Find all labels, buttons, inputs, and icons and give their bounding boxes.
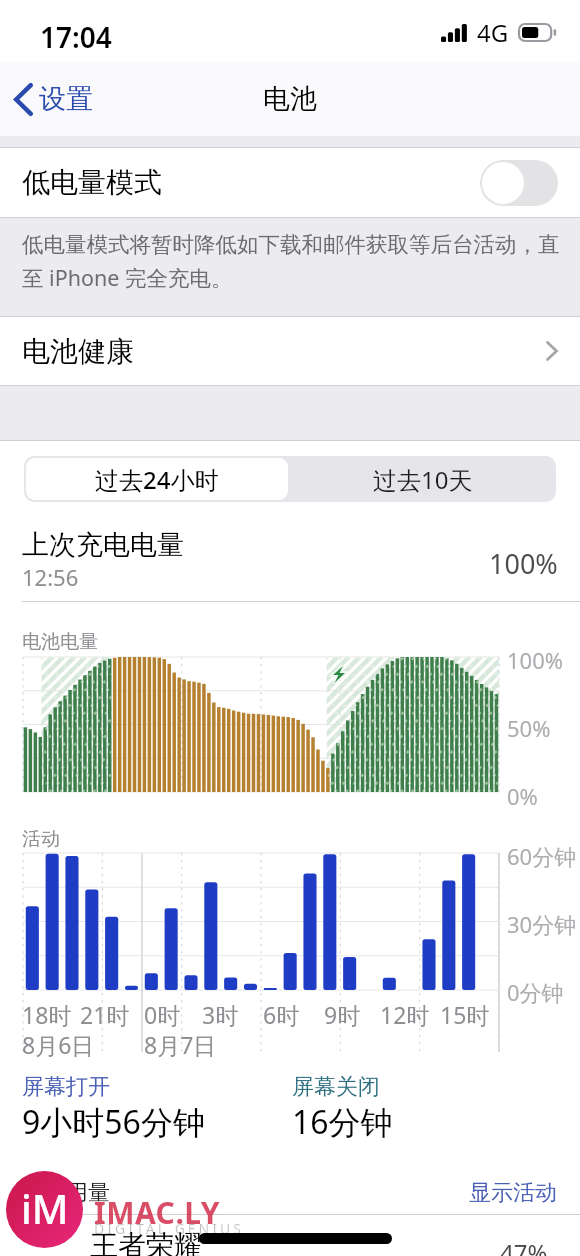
other: 电池健康 — [546, 341, 558, 361]
staticText: 过去10天 — [373, 463, 473, 496]
staticText: 0分钟 — [507, 977, 564, 1007]
staticText: IMAC.LY — [94, 1192, 220, 1233]
staticText: 100% — [489, 545, 558, 582]
button[interactable]: 过去24小时 — [26, 458, 288, 500]
staticText: 9时 — [324, 999, 361, 1030]
button[interactable]: 设置 — [0, 74, 103, 124]
staticText: 王者荣耀 — [90, 1228, 202, 1256]
staticText: iM — [21, 1181, 69, 1235]
staticText: 6时 — [263, 999, 300, 1030]
staticText: 60分钟 — [507, 841, 577, 871]
staticText: 21时 — [80, 999, 130, 1030]
staticText: 4G — [477, 16, 509, 49]
staticText: 16分钟 — [292, 1100, 393, 1144]
staticText: 屏幕打开 — [22, 1073, 110, 1101]
button[interactable]: 电池用量 — [0, 1172, 580, 1214]
button[interactable]: 低电量模式 — [0, 148, 580, 217]
button[interactable]: 过去10天 — [290, 456, 556, 502]
staticText: 8月7日 — [144, 1029, 217, 1060]
staticText: 50% — [507, 713, 551, 743]
staticText: 电池电量 — [22, 630, 98, 654]
staticText: 12:56 — [22, 562, 79, 592]
staticText: 30分钟 — [507, 909, 577, 939]
staticText: 屏幕关闭 — [292, 1073, 380, 1101]
staticText: 低电量模式 — [22, 165, 162, 200]
staticText: 0% — [507, 781, 538, 811]
staticText: 电池用量 — [22, 1179, 110, 1207]
staticText: 低电量模式将暂时降低如下载和邮件获取等后台活动，直至 iPhone 完全充电。 — [22, 231, 572, 292]
button[interactable]: 电池健康 — [0, 317, 580, 385]
staticText: 3时 — [202, 999, 239, 1030]
staticText: 电池健康 — [22, 334, 134, 369]
staticText: 上次充电电量 — [22, 528, 184, 562]
staticText: 100% — [507, 645, 564, 675]
staticText: 活动 — [22, 827, 60, 851]
staticText: 过去24小时 — [95, 463, 219, 496]
staticText: 9小时56分钟 — [22, 1100, 205, 1144]
staticText: 电池 — [263, 82, 317, 116]
staticText: 12时 — [380, 999, 430, 1030]
staticText: 8月6日 — [22, 1029, 95, 1060]
staticText: 15时 — [440, 999, 490, 1030]
staticText: 17:04 — [40, 18, 112, 56]
staticText: 47% — [500, 1236, 548, 1256]
button[interactable]: 低电量模式开关 — [480, 160, 558, 206]
staticText: 设置 — [39, 82, 93, 116]
staticText: 显示活动 — [469, 1179, 557, 1207]
staticText: 18时 — [22, 999, 72, 1030]
staticText: 0时 — [144, 999, 181, 1030]
staticText: DIGITAL GENIUS — [94, 1219, 244, 1238]
